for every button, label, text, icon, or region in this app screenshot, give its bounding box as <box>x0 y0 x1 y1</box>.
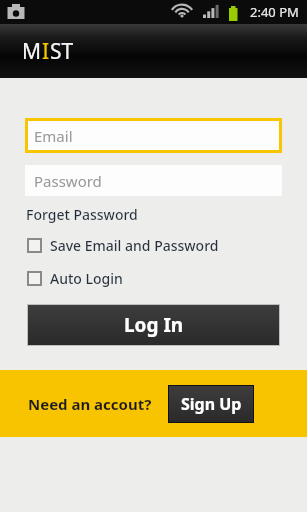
staticText: Log In <box>124 312 184 338</box>
staticText: Auto Login <box>50 269 123 288</box>
staticText: Save Email and Password <box>50 236 219 255</box>
staticText: M <box>22 37 42 66</box>
staticText: 2:40 PM <box>250 3 299 21</box>
staticText: Need an accout? <box>28 394 152 414</box>
button[interactable]: Auto Login <box>27 268 123 289</box>
button[interactable]: Sign Up <box>169 386 253 422</box>
button[interactable]: Email <box>25 118 282 153</box>
button[interactable]: Forget Password <box>25 203 139 226</box>
staticText: Sign Up <box>181 393 242 415</box>
staticText: ST <box>50 37 74 66</box>
staticText: Email <box>34 126 73 146</box>
button[interactable]: Save Email and Password <box>27 235 219 256</box>
button[interactable]: Password <box>25 165 282 196</box>
button[interactable]: Log In <box>28 305 279 345</box>
staticText: Password <box>34 171 102 191</box>
staticText: Forget Password <box>26 205 138 224</box>
staticText: I <box>42 37 50 66</box>
